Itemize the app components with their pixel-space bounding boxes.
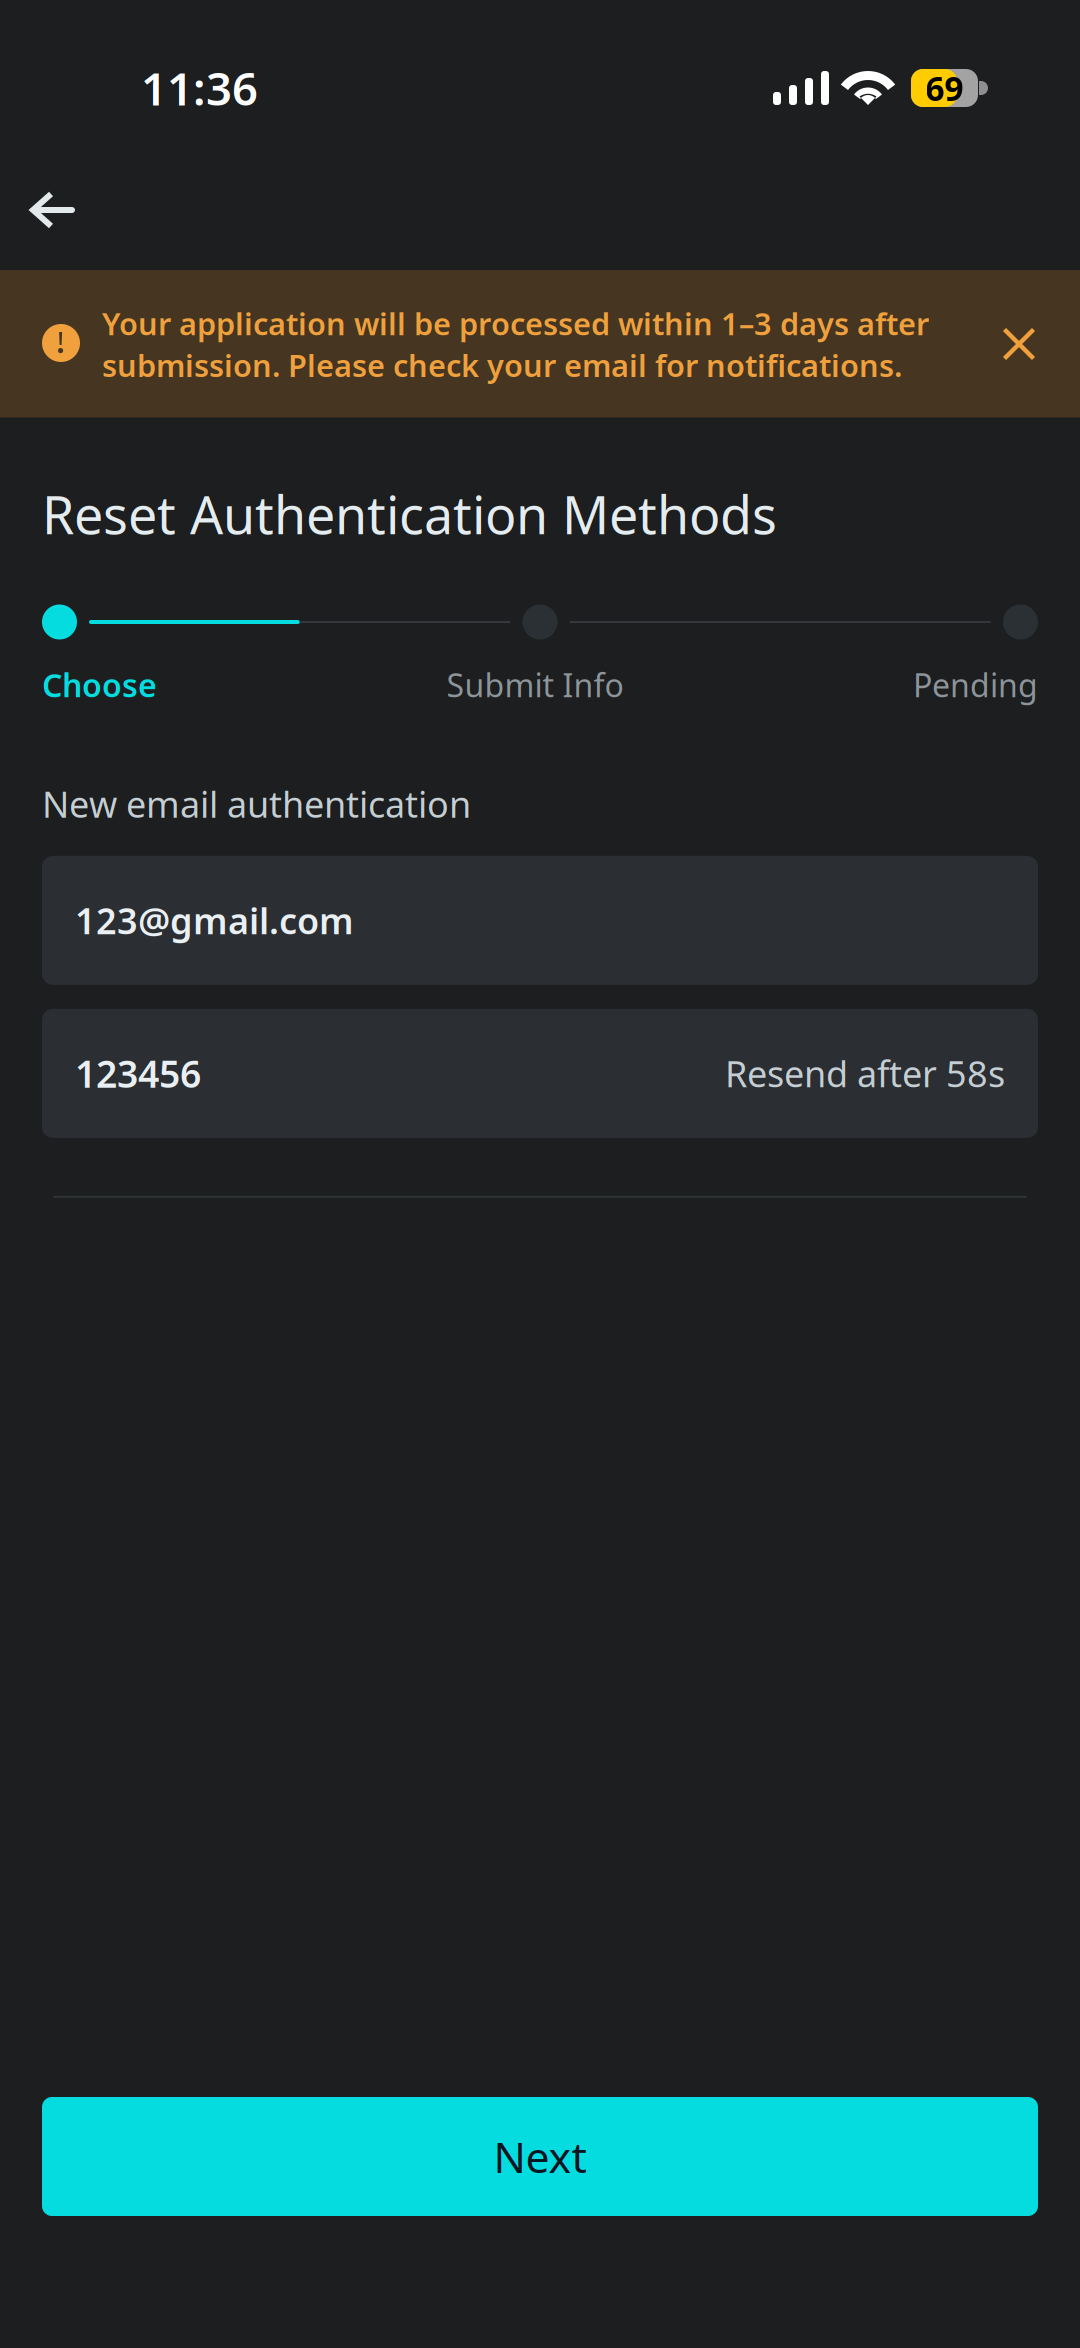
staticText: Reset Authentication Methods [42, 479, 777, 548]
button[interactable]: Next [42, 2097, 1038, 2216]
staticText: Pending [913, 663, 1038, 706]
button[interactable]: Back [0, 162, 102, 266]
staticText: New email authentication [42, 780, 471, 828]
staticText: 69 [925, 66, 963, 110]
staticText: Submit Info [446, 663, 623, 706]
staticText: 123456 [75, 1048, 201, 1098]
staticText: Choose [42, 663, 157, 706]
staticText: Next [493, 2128, 586, 2185]
staticText: Resend after 58s [725, 1049, 1005, 1097]
button[interactable]: Dismiss [981, 328, 1035, 360]
staticText: Your application will be processed withi… [102, 303, 929, 385]
staticText: 11:36 [141, 58, 258, 118]
staticText: 123@gmail.com [75, 896, 354, 944]
